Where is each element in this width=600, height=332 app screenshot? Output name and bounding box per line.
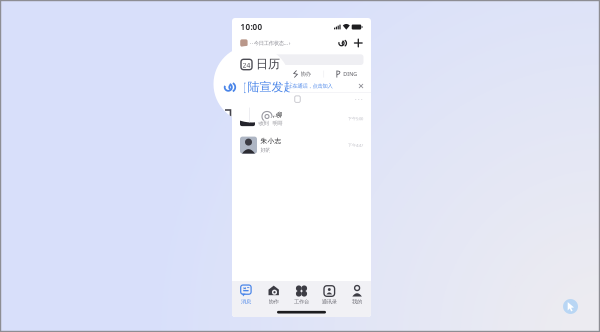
- staticText: • • •: [355, 96, 363, 102]
- staticText: 收到 明哥: [258, 120, 282, 127]
- button[interactable]: 工作台: [288, 283, 315, 306]
- button[interactable]: 通讯录: [315, 283, 343, 306]
- button[interactable]: ［陆宣发起的…］: [232, 80, 371, 92]
- staticText: ［陆宣发起的: [235, 80, 307, 94]
- button[interactable]: 群聊: [232, 106, 371, 132]
- button[interactable]: 协作: [260, 283, 288, 306]
- staticText: 下午5:00: [348, 116, 363, 121]
- button[interactable]: Search: [239, 54, 363, 65]
- button[interactable]: Profile: [240, 39, 248, 47]
- staticText: 日历: [256, 57, 280, 71]
- staticText: · · 今日工作状态… ›: [250, 39, 291, 47]
- staticText: 群聊: [268, 111, 282, 119]
- staticText: 好的: [260, 147, 270, 153]
- button[interactable]: 朱小志: [232, 132, 371, 159]
- button[interactable]: DING: [324, 68, 368, 80]
- button[interactable]: 协办: [279, 68, 323, 80]
- button[interactable]: 消息: [232, 283, 260, 306]
- button[interactable]: • • •: [232, 93, 371, 106]
- button[interactable]: Video meeting: [338, 39, 346, 47]
- staticText: 工作台: [294, 298, 309, 305]
- staticText: 24: [242, 61, 250, 70]
- staticText: 10:00: [240, 22, 262, 32]
- staticText: 朱小志: [260, 137, 281, 145]
- staticText: 协办: [301, 71, 311, 77]
- staticText: 消息: [241, 298, 251, 305]
- staticText: 协作: [269, 298, 279, 305]
- button[interactable]: 我的: [343, 283, 371, 306]
- staticText: DING: [343, 70, 357, 78]
- staticText: 我的: [352, 298, 362, 305]
- staticText: 正在通话，点击加入: [288, 83, 333, 89]
- staticText: 下午4:47: [348, 142, 363, 148]
- staticText: 通讯录: [322, 298, 337, 305]
- staticText: ［陆宣发起的…］: [248, 82, 287, 90]
- button[interactable]: Add: [346, 38, 363, 47]
- button[interactable]: 24: [235, 68, 279, 80]
